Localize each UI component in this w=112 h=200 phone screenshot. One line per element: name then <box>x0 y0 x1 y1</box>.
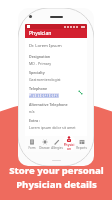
staticText: Gastroenterologist <box>29 77 61 82</box>
staticText: Designation <box>29 54 51 59</box>
staticText: Alternative Telephone <box>29 102 68 107</box>
staticText: Physician details <box>16 178 97 191</box>
button[interactable]: Disease <box>38 136 51 152</box>
staticText: Dr. Lorem Ipsum <box>29 43 62 49</box>
button[interactable]: Allergies <box>51 136 63 152</box>
staticText: +01 01 0123 0123 <box>29 93 59 98</box>
button[interactable]: +01 01 0123 0123 <box>29 93 59 98</box>
button[interactable]: Reports <box>75 136 87 152</box>
staticText: Extra : <box>29 118 40 123</box>
staticText: Form <box>28 146 36 150</box>
staticText: Reports <box>76 146 87 150</box>
staticText: Telephone <box>29 86 48 91</box>
staticText: Specialty <box>29 70 45 75</box>
button[interactable]: Physician <box>25 29 87 38</box>
button[interactable]: Physician <box>63 136 75 152</box>
staticText: Physician <box>63 143 75 151</box>
staticText: Disease <box>39 146 50 150</box>
staticText: Physician <box>29 30 52 37</box>
staticText: MD - Primary <box>29 61 52 66</box>
staticText: n/a <box>29 109 35 114</box>
staticText: Store your personal <box>9 164 104 177</box>
staticText: Allergies <box>51 146 63 150</box>
button[interactable]: Form <box>25 136 38 152</box>
staticText: Lorem ipsum dolor sit amet <box>29 125 76 130</box>
button[interactable]: Call physician <box>76 88 84 96</box>
